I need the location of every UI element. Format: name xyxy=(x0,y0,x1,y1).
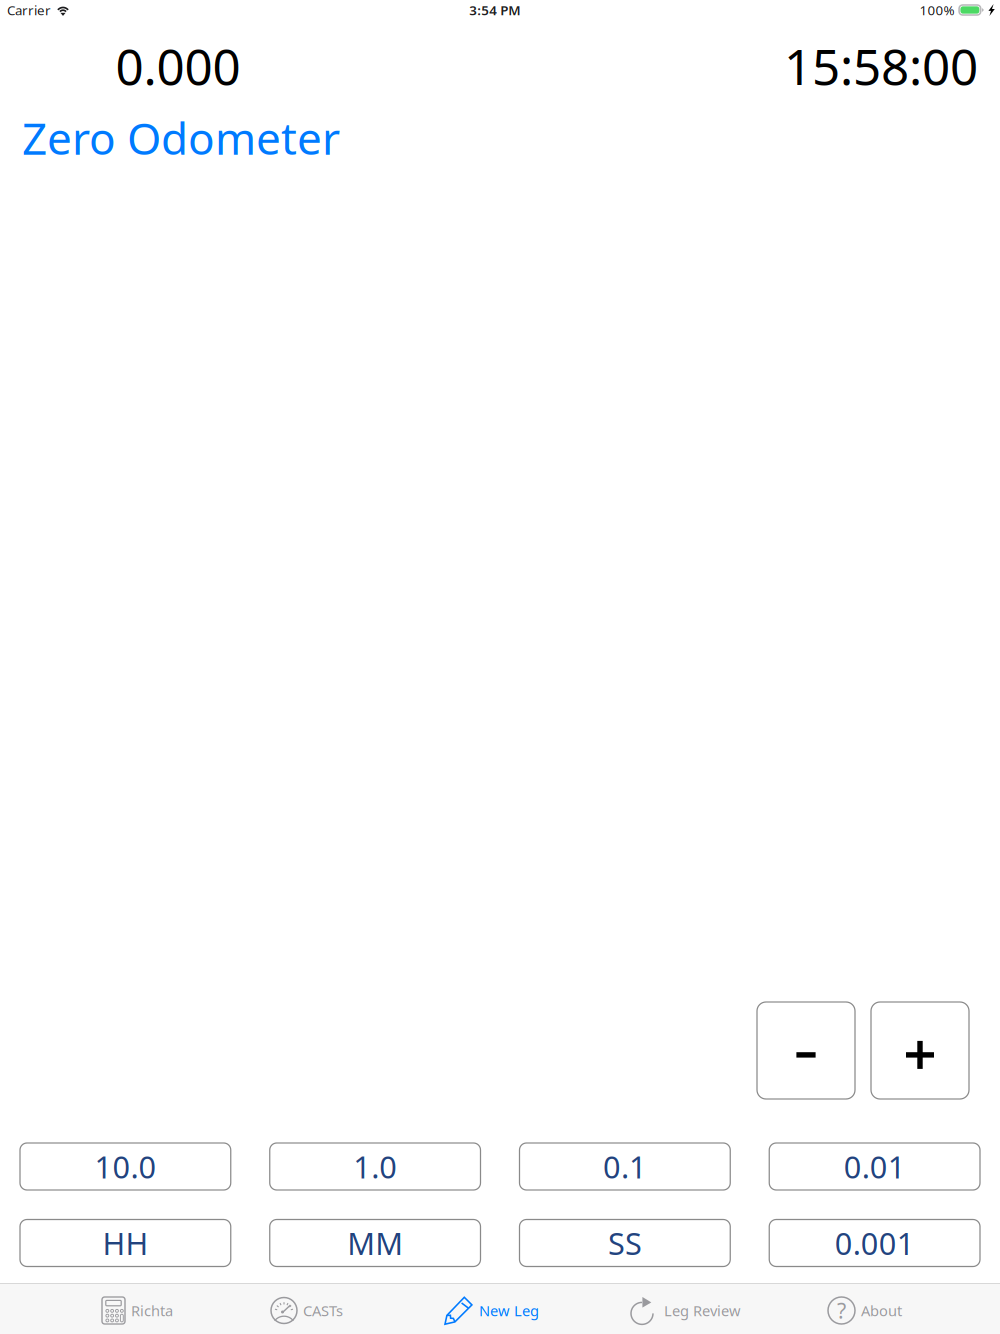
button[interactable]: 1.0 xyxy=(270,1143,481,1190)
button[interactable]: SS xyxy=(519,1219,730,1266)
staticText: 10.0 xyxy=(94,1146,156,1187)
button[interactable]: Richta xyxy=(102,1283,173,1334)
button[interactable]: MM xyxy=(270,1219,481,1266)
staticText: SS xyxy=(608,1223,642,1263)
button[interactable]: 10.0 xyxy=(20,1143,231,1190)
staticText: About xyxy=(861,1301,902,1320)
button[interactable]: HH xyxy=(20,1219,231,1266)
staticText: 0.1 xyxy=(603,1146,647,1187)
staticText: Leg Review xyxy=(664,1301,741,1320)
staticText: Richta xyxy=(131,1301,173,1320)
button[interactable]: New Leg xyxy=(444,1283,539,1334)
staticText: 0.01 xyxy=(844,1146,906,1187)
staticText: New Leg xyxy=(479,1301,539,1320)
button[interactable]: 0.01 xyxy=(769,1143,980,1190)
staticText: MM xyxy=(347,1223,403,1263)
staticText: ? xyxy=(837,1296,846,1325)
staticText: HH xyxy=(102,1223,148,1263)
button[interactable]: Decrease xyxy=(757,1002,855,1099)
staticText: CASTs xyxy=(303,1301,343,1320)
button[interactable]: Leg Review xyxy=(631,1283,741,1334)
button[interactable]: Zero Odometer xyxy=(22,108,340,167)
button[interactable]: ? xyxy=(828,1283,902,1334)
staticText: 0.000 xyxy=(115,33,240,98)
staticText: 15:58:00 xyxy=(784,33,978,98)
button[interactable]: CASTs xyxy=(271,1283,343,1334)
button[interactable]: 0.1 xyxy=(519,1143,730,1190)
staticText: 3:54 PM xyxy=(469,1,520,19)
staticText: 1.0 xyxy=(353,1146,397,1187)
staticText: Carrier xyxy=(7,1,51,19)
button[interactable]: Increase xyxy=(871,1002,969,1099)
staticText: 100% xyxy=(919,1,954,19)
staticText: Zero Odometer xyxy=(22,108,340,167)
button[interactable]: 0.001 xyxy=(769,1219,980,1266)
staticText: 0.001 xyxy=(835,1223,915,1263)
